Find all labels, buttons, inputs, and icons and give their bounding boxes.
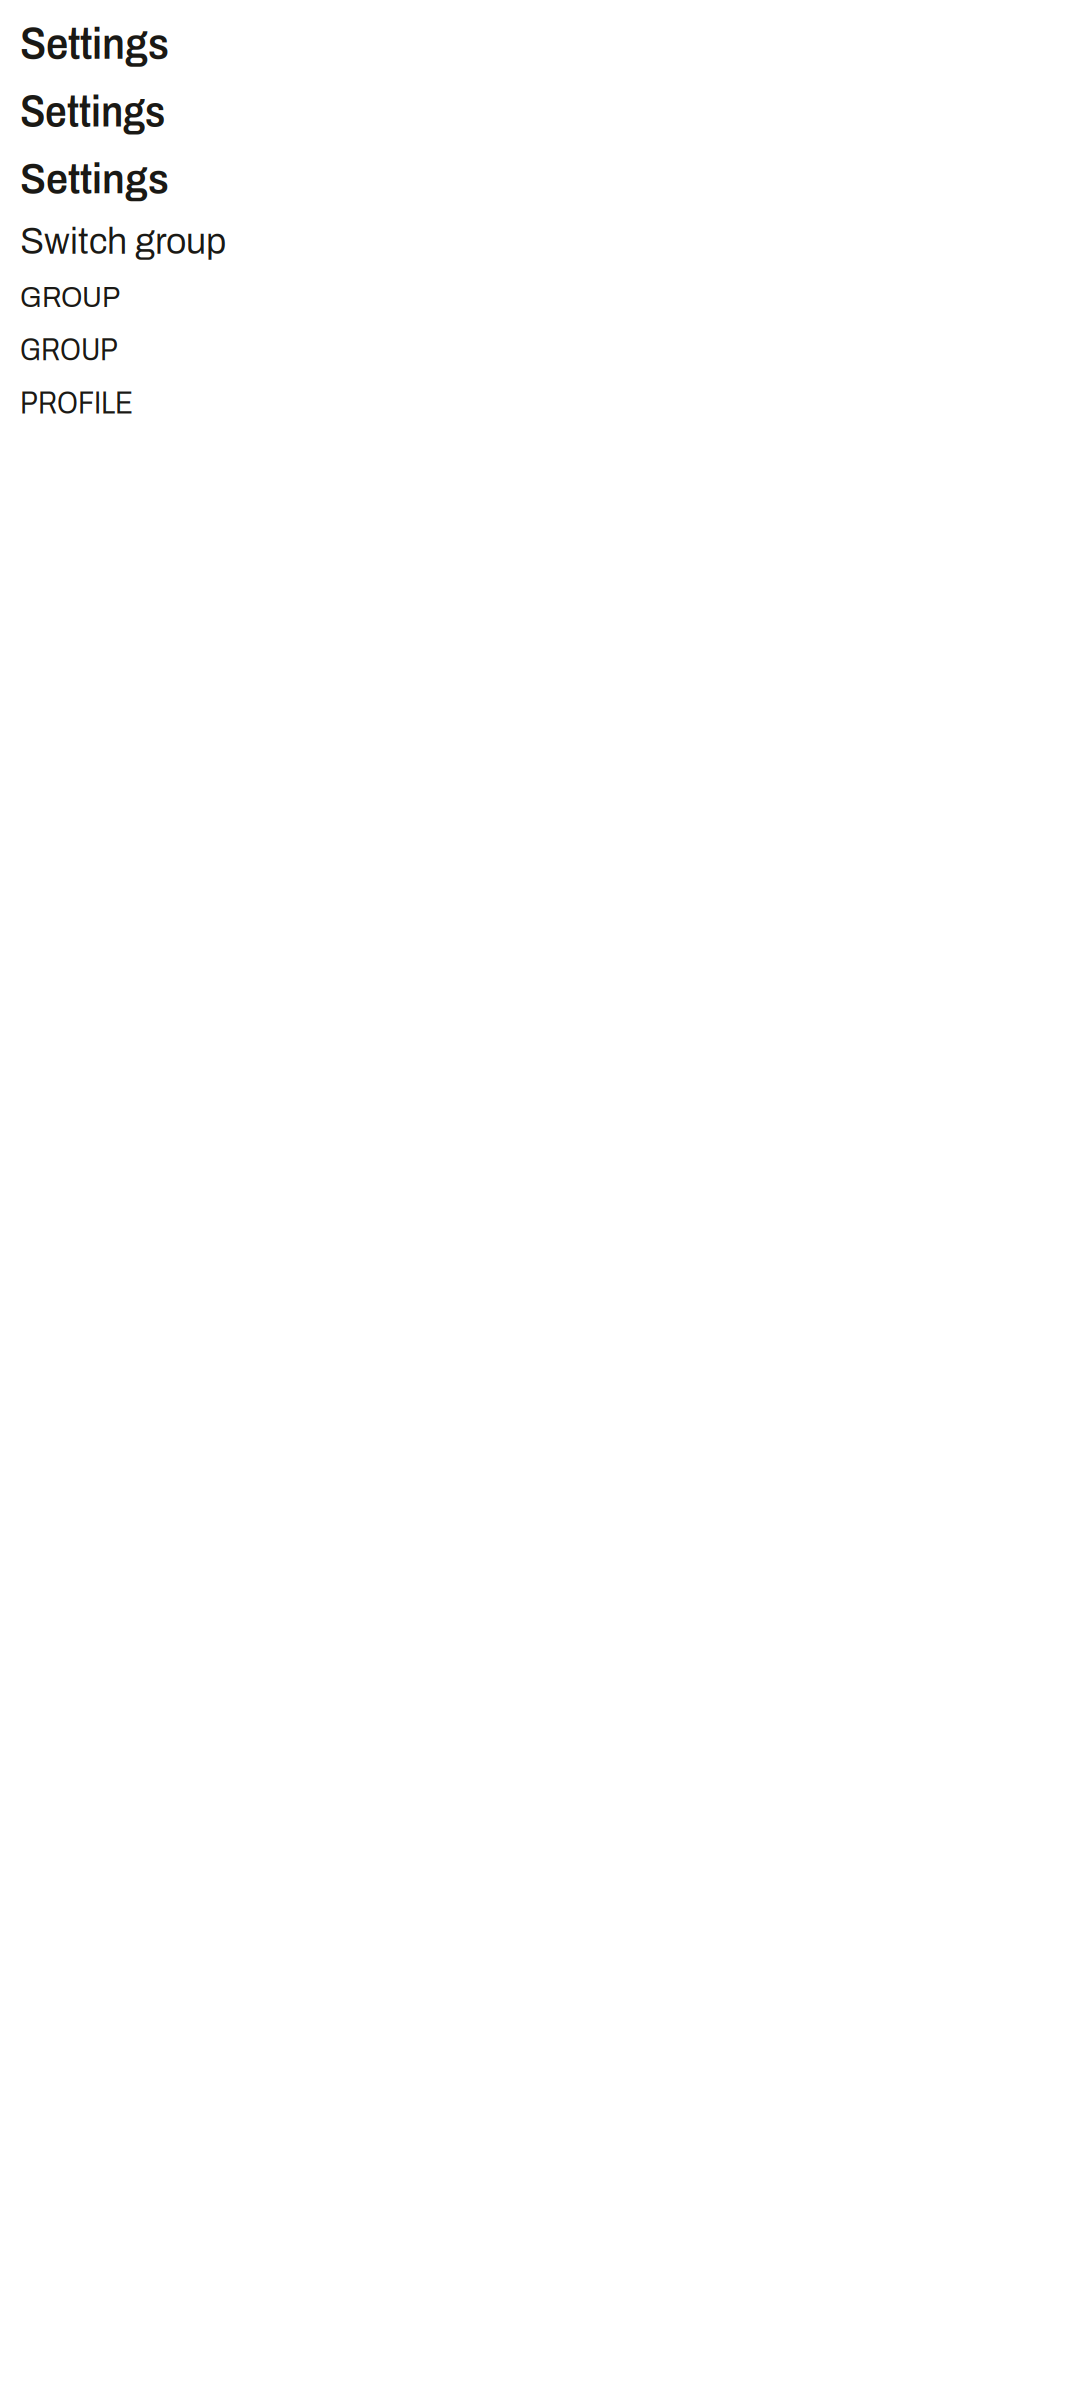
staticText: PROFILE: [20, 387, 133, 420]
staticText: GROUP: [20, 281, 120, 313]
staticText: Switch group: [20, 222, 226, 261]
staticText: Settings: [20, 20, 169, 68]
staticText: GROUP: [20, 333, 118, 367]
staticText: Settings: [20, 156, 169, 202]
staticText: Settings: [20, 88, 165, 136]
